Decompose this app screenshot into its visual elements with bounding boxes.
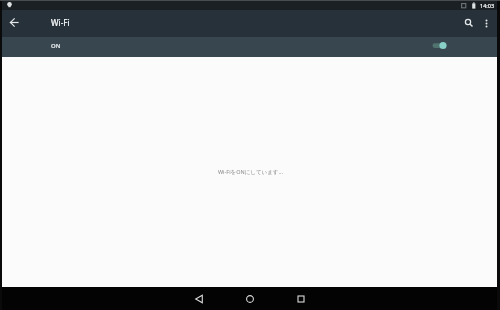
button[interactable] [242,291,258,307]
staticText: Wi-Fi [51,17,70,28]
button[interactable] [481,18,492,29]
button[interactable] [6,15,23,32]
button[interactable] [462,16,476,30]
button[interactable] [191,291,207,307]
staticText: 14:03 [480,2,495,9]
button[interactable]: ON [0,37,500,57]
staticText: ON [51,42,61,50]
button[interactable] [293,291,309,307]
staticText: Wi-FiをONにしています... [218,168,283,176]
